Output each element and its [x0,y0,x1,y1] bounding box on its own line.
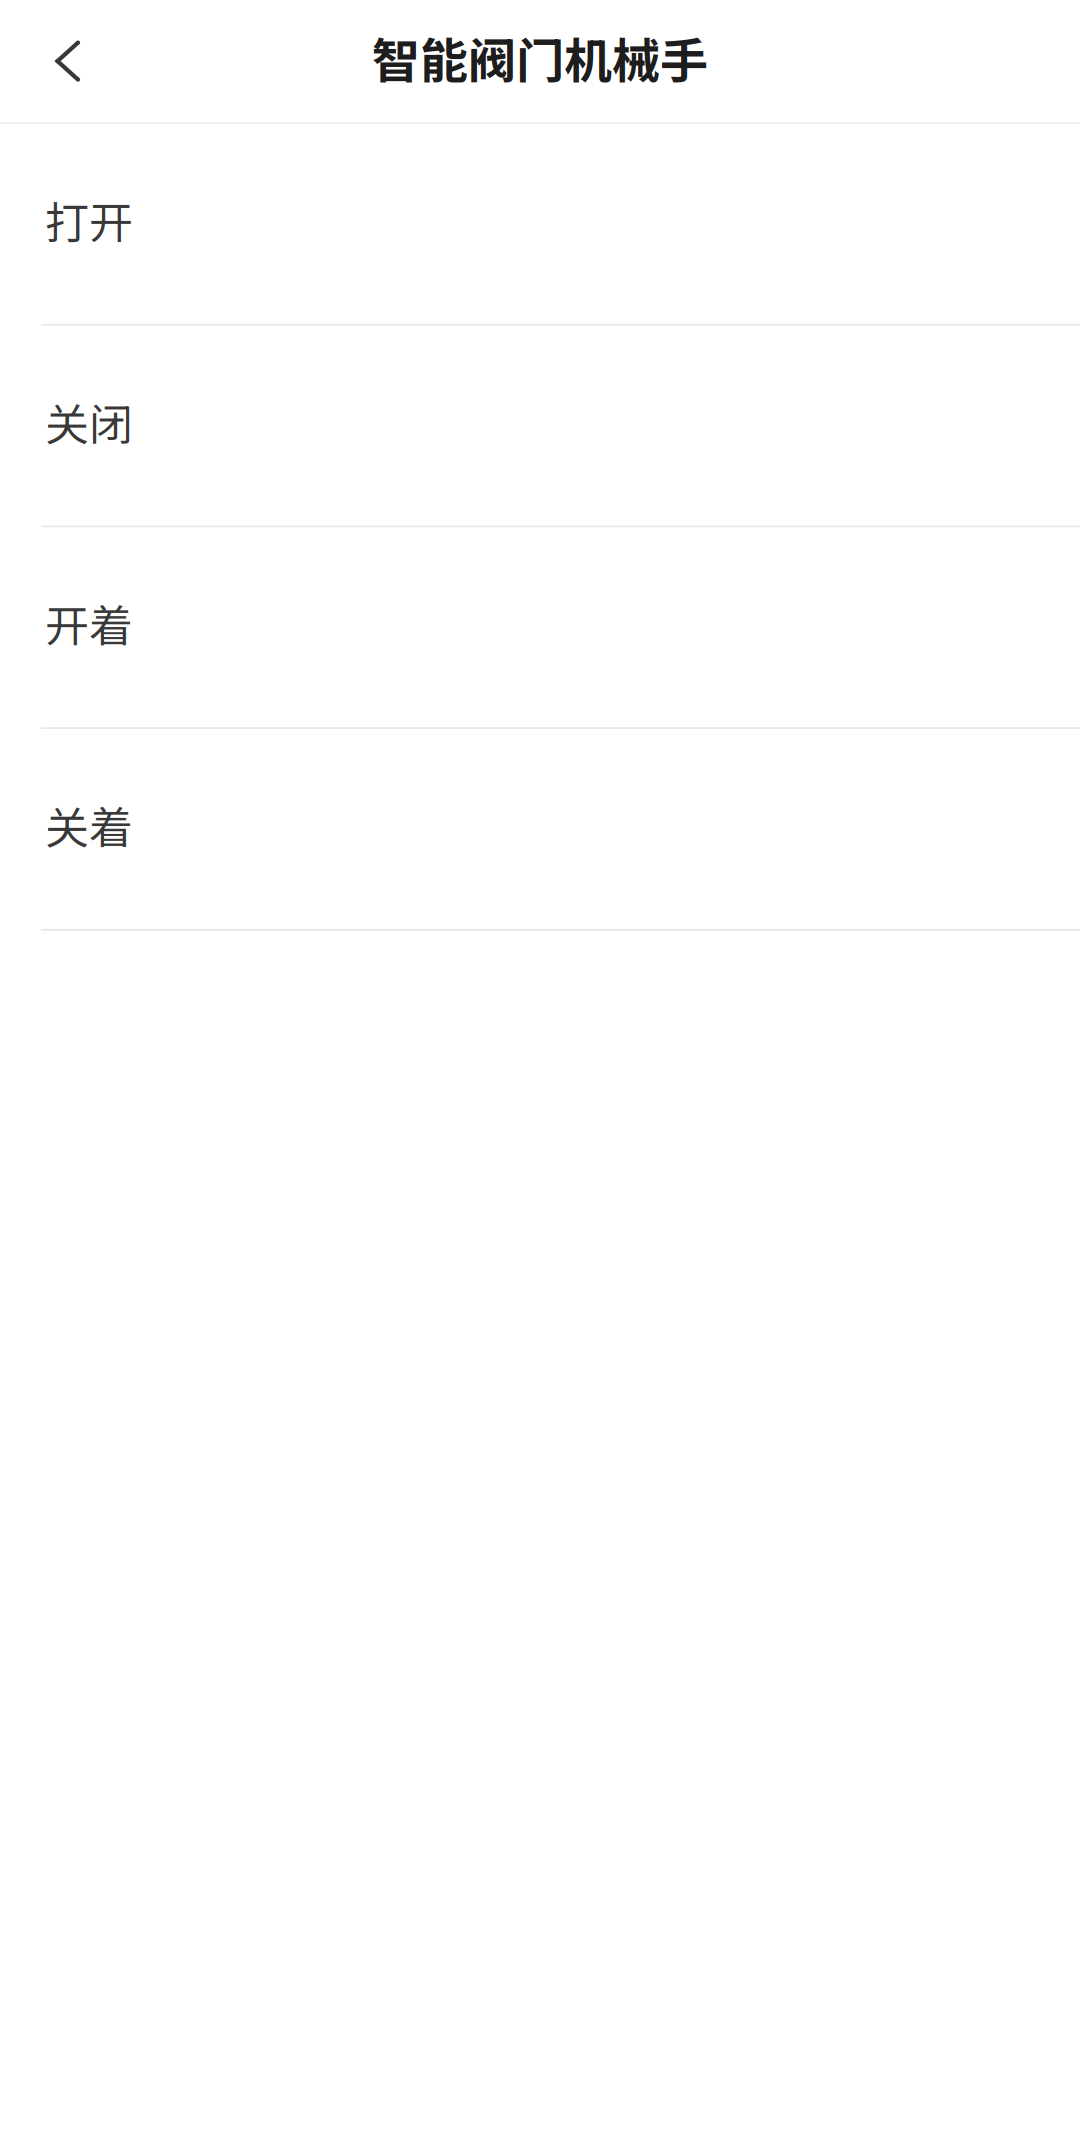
button[interactable]: 返回 [0,0,110,122]
staticText: 关着 [45,793,133,857]
staticText: 智能阀门机械手 [372,23,708,92]
staticText: 打开 [45,188,133,252]
button[interactable]: 打开 [0,124,1080,326]
staticText: 关闭 [45,390,133,453]
staticText: 开着 [45,591,133,655]
button[interactable]: 开着 [0,527,1080,729]
button[interactable]: 关着 [0,729,1080,931]
button[interactable]: 关闭 [0,326,1080,528]
